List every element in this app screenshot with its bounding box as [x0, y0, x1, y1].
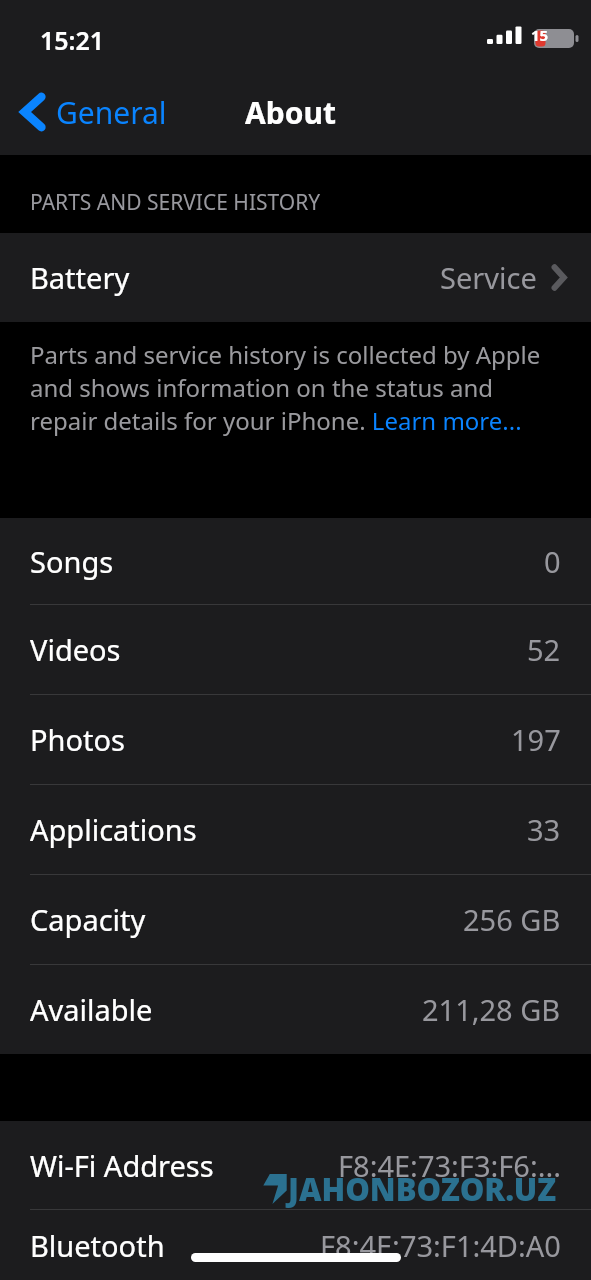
button[interactable]: Applications: [0, 785, 591, 874]
staticText: General: [56, 92, 167, 133]
staticText: 211,28 GB: [422, 990, 561, 1029]
staticText: Available: [30, 990, 153, 1029]
staticText: Songs: [30, 542, 114, 581]
staticText: Wi-Fi Address: [30, 1146, 214, 1185]
staticText: 52: [527, 630, 561, 669]
staticText: Bluetooth: [30, 1226, 165, 1265]
button[interactable]: General: [0, 84, 181, 140]
staticText: 15: [531, 25, 549, 45]
staticText: 15:21: [40, 23, 105, 57]
staticText: Photos: [30, 720, 125, 759]
staticText: F8:4E:73:F3:F6:...: [338, 1146, 561, 1185]
staticText: Videos: [30, 630, 121, 669]
staticText: PARTS AND SERVICE HISTORY: [30, 188, 321, 217]
button[interactable]: Battery: [0, 233, 591, 322]
staticText: Battery: [30, 258, 130, 297]
button[interactable]: Capacity: [0, 875, 591, 964]
button[interactable]: Videos: [0, 605, 591, 694]
staticText: 197: [511, 720, 561, 759]
button[interactable]: Songs: [0, 518, 591, 604]
staticText: 256 GB: [463, 900, 561, 939]
staticText: Applications: [30, 810, 197, 849]
staticText: About: [245, 92, 336, 133]
staticText: Capacity: [30, 900, 146, 939]
button[interactable]: Wi-Fi Address: [0, 1121, 591, 1209]
staticText: 33: [527, 810, 561, 849]
button[interactable]: Photos: [0, 695, 591, 784]
staticText: F8:4E:73:F1:4D:A0: [320, 1226, 561, 1265]
button[interactable]: Bluetooth: [0, 1210, 591, 1280]
button[interactable]: Available: [0, 965, 591, 1054]
staticText: 0: [544, 542, 561, 581]
staticText: JAHONBOZOR.UZ: [288, 1168, 557, 1210]
staticText: Service: [440, 258, 537, 297]
staticText: Parts and service history is collected b…: [30, 338, 563, 437]
